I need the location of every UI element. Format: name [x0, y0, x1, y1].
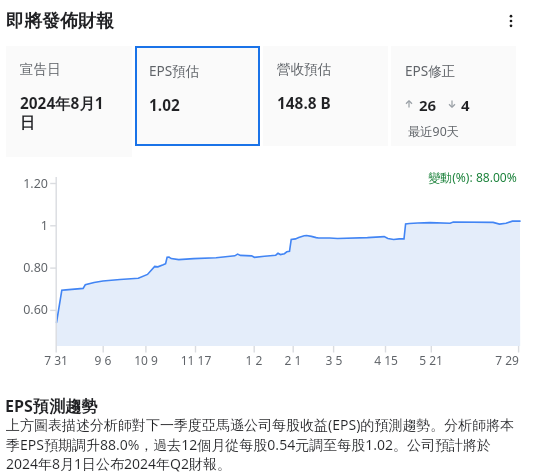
staticText: 變動(%): 88.00%	[428, 169, 517, 186]
staticText: 2024年8月1日	[20, 93, 110, 133]
staticText: 宣告日	[20, 61, 61, 78]
staticText: 10 9	[116, 352, 176, 368]
staticText: 7 29	[477, 352, 535, 368]
staticText: 0.80	[0, 259, 48, 276]
staticText: 9 6	[73, 352, 133, 368]
staticText: EPS預估	[149, 61, 200, 80]
staticText: 26	[419, 95, 437, 113]
staticText: EPS預測趨勢	[5, 395, 98, 417]
staticText: 3 5	[304, 352, 364, 368]
staticText: 營收預估	[277, 61, 332, 78]
staticText: 1.20	[0, 175, 48, 192]
staticText: 4 15	[356, 352, 416, 368]
staticText: 即將發佈財報	[6, 10, 114, 33]
staticText: 1 2	[224, 352, 284, 368]
staticText: 最近90天	[408, 123, 459, 140]
staticText: 0.60	[0, 301, 48, 318]
button[interactable]: 宣告日	[6, 46, 132, 157]
staticText: 5 21	[401, 352, 461, 368]
staticText: 1.02	[149, 95, 180, 116]
button[interactable]: More options	[499, 9, 523, 33]
staticText: 2 1	[263, 352, 323, 368]
staticText: 148.8 B	[277, 93, 331, 114]
staticText: 11 17	[166, 352, 226, 368]
button[interactable]: EPS修正	[391, 46, 516, 146]
staticText: 上方圖表描述分析師對下一季度亞馬遜公司每股收益(EPS)的預測趨勢。分析師將本季…	[6, 415, 518, 473]
button[interactable]: EPS預估	[135, 46, 260, 146]
staticText: 1	[0, 217, 48, 234]
staticText: 4	[461, 95, 470, 113]
button[interactable]: 營收預估	[263, 46, 388, 146]
staticText: EPS修正	[405, 61, 456, 80]
staticText: 7 31	[26, 352, 86, 368]
